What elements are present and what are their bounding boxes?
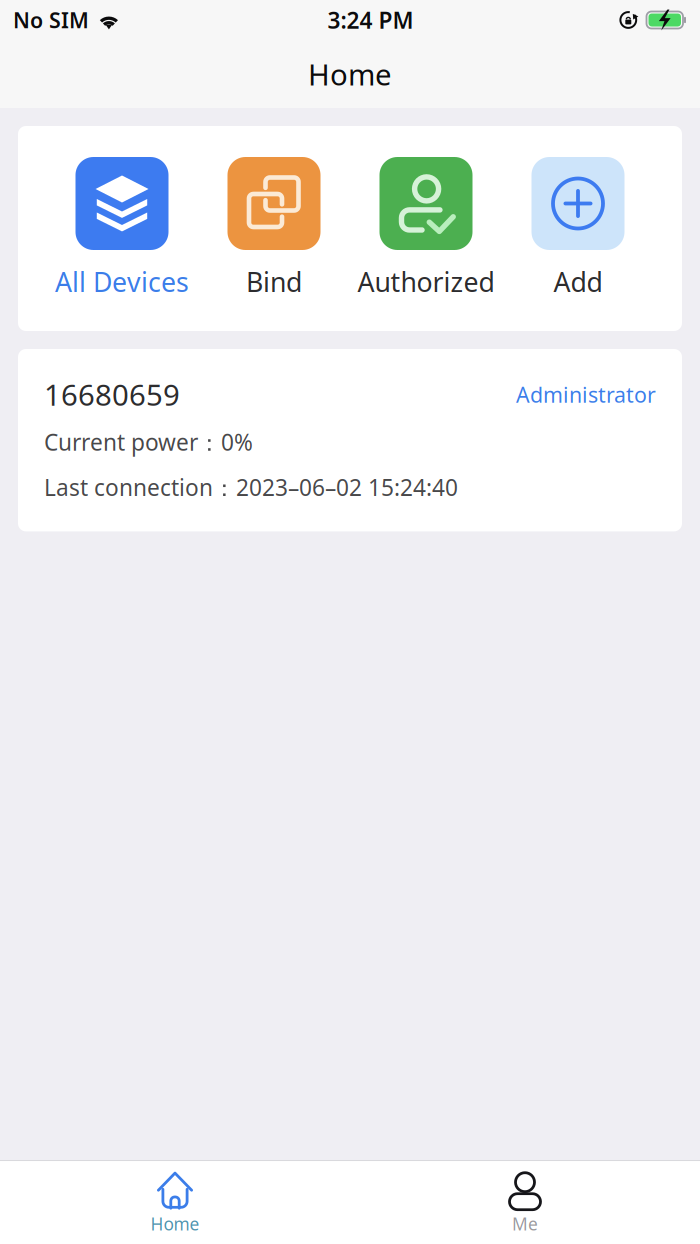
staticText: Authorized: [357, 264, 494, 299]
staticText: No SIM: [13, 6, 89, 34]
button[interactable]: Me: [350, 1161, 700, 1244]
button[interactable]: Bind: [198, 157, 350, 300]
staticText: All Devices: [55, 264, 189, 299]
staticText: 16680659: [44, 375, 180, 414]
staticText: Home: [308, 54, 392, 93]
staticText: Current power：0%: [44, 427, 253, 457]
staticText: Add: [553, 264, 602, 299]
staticText: Bind: [246, 264, 302, 299]
staticText: 3:24 PM: [328, 5, 414, 35]
button[interactable]: Add: [502, 157, 654, 300]
staticText: Administrator: [516, 380, 656, 409]
staticText: Last connection：2023–06–02 15:24:40: [44, 472, 458, 502]
button[interactable]: Authorized: [350, 157, 502, 300]
button[interactable]: Home: [0, 1161, 350, 1244]
staticText: Me: [512, 1212, 538, 1235]
staticText: Home: [150, 1212, 199, 1235]
button[interactable]: 16680659: [0, 331, 700, 531]
button[interactable]: All Devices: [46, 157, 198, 300]
